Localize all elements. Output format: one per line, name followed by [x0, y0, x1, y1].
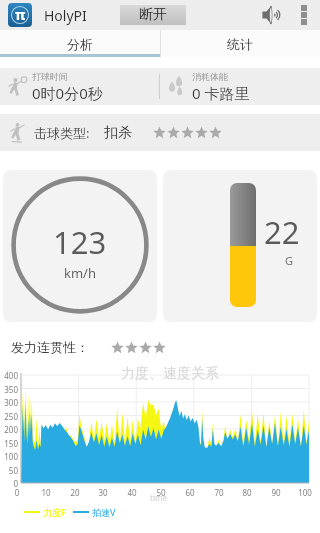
staticText: 发力连贯性：	[11, 339, 89, 355]
staticText: 拍速V	[92, 506, 116, 518]
staticText: 150	[0, 438, 18, 449]
staticText: 70	[212, 487, 226, 498]
staticText: 断开	[139, 6, 167, 24]
staticText: 40	[125, 487, 139, 498]
button[interactable]: 断开	[120, 5, 186, 25]
button[interactable]: 消耗体能	[160, 68, 320, 105]
staticText: 250	[0, 411, 18, 422]
button[interactable]: 分析	[0, 30, 160, 57]
staticText: 10	[39, 487, 53, 498]
button[interactable]: 22	[163, 170, 317, 322]
staticText: HolyPI	[44, 6, 87, 25]
button[interactable]: App logo	[8, 3, 32, 27]
staticText: 400	[0, 370, 18, 381]
button[interactable]: 123	[3, 170, 157, 322]
staticText: 300	[0, 397, 18, 408]
staticText: 50	[0, 465, 18, 476]
staticText: 0	[0, 478, 18, 489]
staticText: 分析	[67, 36, 93, 52]
staticText: 击球类型:	[34, 124, 90, 142]
staticText: π	[15, 5, 26, 24]
staticText: 100	[0, 451, 18, 462]
button[interactable]: 发力连贯性：	[0, 336, 320, 358]
staticText: 80	[240, 487, 254, 498]
staticText: 0 卡路里	[192, 83, 250, 103]
staticText: 123	[53, 221, 107, 263]
staticText: 90	[269, 487, 283, 498]
staticText: 350	[0, 384, 18, 395]
button[interactable]: More options	[294, 2, 314, 28]
staticText: 22	[264, 211, 300, 253]
staticText: 消耗体能	[192, 71, 228, 82]
staticText: 力度F	[43, 506, 66, 518]
staticText: 打球时间	[32, 71, 68, 82]
staticText: 50	[154, 487, 168, 498]
staticText: 扣杀	[104, 124, 132, 142]
staticText: 60	[183, 487, 197, 498]
staticText: 力度、速度关系	[121, 365, 219, 383]
button[interactable]: 击球类型:	[0, 114, 320, 151]
staticText: 100	[298, 487, 312, 498]
button[interactable]: Sound	[257, 2, 287, 28]
staticText: G	[285, 253, 294, 268]
staticText: 0时0分0秒	[32, 83, 103, 103]
staticText: 统计	[227, 36, 253, 52]
staticText: km/h	[64, 264, 96, 282]
staticText: 200	[0, 424, 18, 435]
staticText: time	[150, 492, 167, 503]
button[interactable]: 统计	[160, 30, 320, 57]
staticText: 20	[68, 487, 82, 498]
staticText: 0	[10, 487, 24, 498]
staticText: 30	[96, 487, 110, 498]
button[interactable]: 打球时间	[0, 68, 159, 105]
